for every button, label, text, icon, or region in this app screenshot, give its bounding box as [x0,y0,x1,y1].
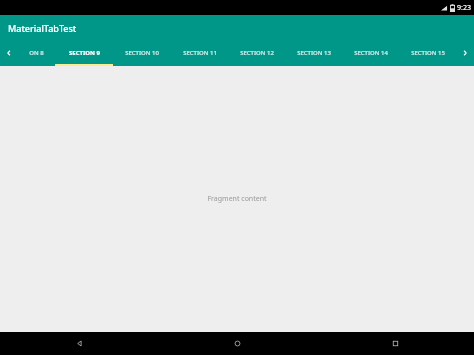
button[interactable]: ON 8 [18,40,55,66]
staticText: SECTION 13 [297,49,331,57]
staticText: SECTION 11 [183,49,217,57]
button[interactable]: SECTION 14 [342,40,399,66]
button[interactable]: SECTION 9 [55,40,113,66]
button[interactable]: SECTION 12 [228,40,285,66]
staticText: ON 8 [29,49,44,57]
staticText: SECTION 12 [240,49,274,57]
staticText: SECTION 10 [125,49,159,57]
button[interactable]: Scroll tabs left [0,40,18,66]
button[interactable]: SECTION 15 [399,40,456,66]
staticText: SECTION 14 [354,49,388,57]
button[interactable]: Recent apps [316,332,474,355]
staticText: SECTION 9 [69,49,100,57]
staticText: SECTION 15 [411,49,445,57]
button[interactable]: Back [0,332,158,355]
button[interactable]: Home [158,332,316,355]
staticText: MaterialTabTest [8,22,77,34]
staticText: 9:23 [457,3,471,13]
button[interactable]: SECTION 10 [113,40,171,66]
button[interactable]: SECTION 13 [285,40,342,66]
staticText: Fragment content [207,194,267,204]
button[interactable]: Scroll tabs right [456,40,474,66]
button[interactable]: SECTION 11 [171,40,228,66]
